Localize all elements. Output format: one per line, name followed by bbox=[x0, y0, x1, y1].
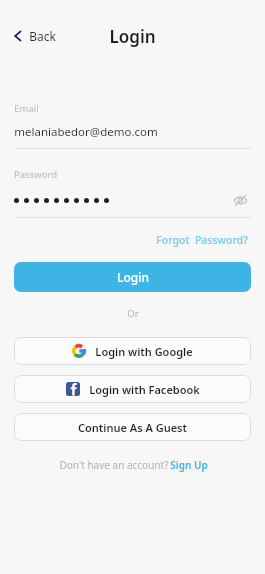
staticText: Login with Facebook bbox=[89, 382, 200, 397]
button[interactable]: Continue As A Guest bbox=[14, 413, 251, 441]
staticText: Continue As A Guest bbox=[78, 420, 187, 435]
staticText: Back bbox=[29, 28, 56, 44]
button[interactable]: Don't have an account? bbox=[0, 458, 265, 472]
button[interactable]: Login bbox=[14, 262, 251, 292]
staticText: Login with Google bbox=[95, 344, 193, 359]
staticText: Password bbox=[14, 168, 57, 181]
button[interactable]: Forgot Password? bbox=[153, 230, 251, 250]
staticText: Forgot Password? bbox=[156, 233, 248, 247]
button[interactable]: Back bbox=[10, 24, 58, 48]
staticText: melaniabedor@demo.com bbox=[14, 124, 158, 140]
button[interactable]: Show password bbox=[229, 189, 251, 211]
staticText: Login bbox=[117, 269, 149, 285]
staticText: Or bbox=[127, 307, 139, 320]
staticText: Sign Up bbox=[170, 458, 208, 472]
staticText: Login bbox=[109, 25, 156, 48]
staticText: Email bbox=[14, 102, 39, 115]
staticText: Don't have an account? bbox=[58, 458, 170, 472]
button[interactable]: Login with Facebook bbox=[14, 375, 251, 403]
button[interactable]: Login with Google bbox=[14, 337, 251, 365]
